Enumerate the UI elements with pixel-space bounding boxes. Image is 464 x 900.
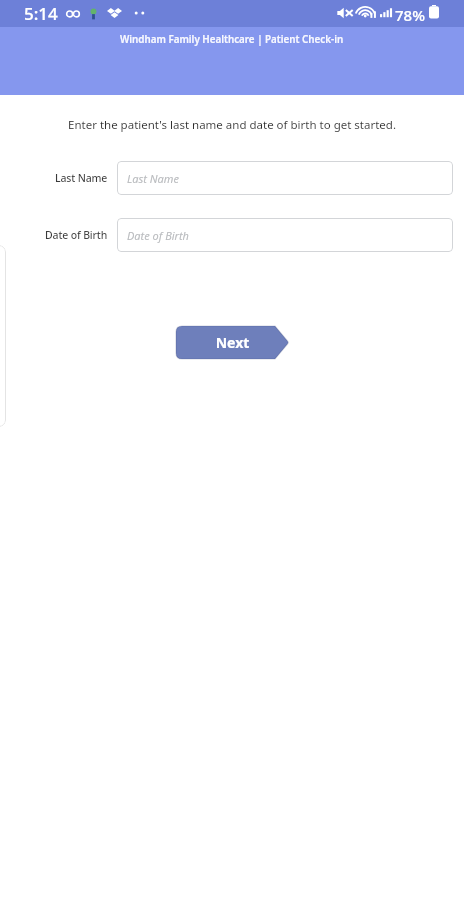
other: Reading mode: [66, 9, 80, 18]
staticText: 5:14: [24, 2, 58, 25]
staticText: Last Name: [55, 171, 108, 185]
staticText: Date of Birth: [45, 228, 108, 242]
other: Cloud sync: [107, 7, 122, 20]
button[interactable]: Date of Birth: [117, 218, 453, 252]
other: Mobile signal: [380, 6, 392, 20]
other: Location: [90, 7, 97, 20]
button[interactable]: Next: [176, 326, 289, 359]
staticText: Windham Family Healthcare | Patient Chec…: [120, 33, 344, 46]
staticText: Date of Birth: [127, 228, 189, 243]
staticText: Next: [176, 333, 289, 352]
staticText: Last Name: [127, 171, 179, 186]
other: More notifications: [134, 10, 145, 16]
other: Sound off: [337, 6, 353, 20]
staticText: Enter the patient's last name and date o…: [0, 117, 464, 133]
button[interactable]: Last Name: [117, 161, 453, 195]
staticText: 78%: [395, 5, 425, 25]
other: Wi-Fi: [356, 5, 378, 20]
other: Battery 78 percent: [429, 5, 439, 20]
